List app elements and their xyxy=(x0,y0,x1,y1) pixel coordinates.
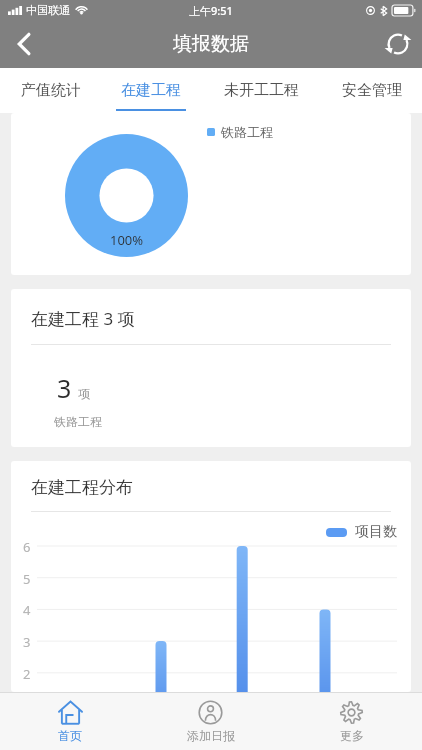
button[interactable]: 安全管理 xyxy=(322,68,422,113)
staticText: 在建工程 3 项 xyxy=(31,307,135,330)
staticText: 产值统计 xyxy=(21,81,81,100)
staticText: 更多 xyxy=(340,728,364,743)
staticText: 填报数据 xyxy=(173,32,249,56)
button[interactable]: Refresh xyxy=(374,20,422,68)
button[interactable]: 产值统计 xyxy=(0,68,101,113)
staticText: 3 xyxy=(23,633,31,651)
staticText: 在建工程分布 xyxy=(31,477,133,498)
button[interactable]: 在建工程 xyxy=(101,68,201,113)
staticText: 铁路工程 xyxy=(54,414,102,429)
staticText: 项 xyxy=(78,386,90,401)
staticText: 5 xyxy=(23,570,31,588)
button[interactable]: Back xyxy=(0,20,48,68)
staticText: 项目数 xyxy=(355,523,397,541)
button[interactable]: 首页 xyxy=(0,692,140,750)
staticText: 铁路工程 xyxy=(221,124,273,140)
staticText: 未开工工程 xyxy=(224,81,299,100)
staticText: 4 xyxy=(23,601,31,619)
button[interactable]: 未开工工程 xyxy=(201,68,322,113)
button[interactable]: 更多 xyxy=(281,692,422,750)
staticText: 100% xyxy=(110,231,144,249)
staticText: 6 xyxy=(23,538,31,556)
staticText: 中国联通 xyxy=(26,3,70,17)
staticText: 添加日报 xyxy=(187,728,235,743)
button[interactable]: 添加日报 xyxy=(140,692,281,750)
staticText: 上午9:51 xyxy=(189,3,233,18)
staticText: 在建工程 xyxy=(121,81,181,100)
staticText: 安全管理 xyxy=(342,81,402,100)
staticText: 3 xyxy=(57,371,72,405)
staticText: 首页 xyxy=(58,728,82,743)
staticText: 2 xyxy=(23,665,31,683)
